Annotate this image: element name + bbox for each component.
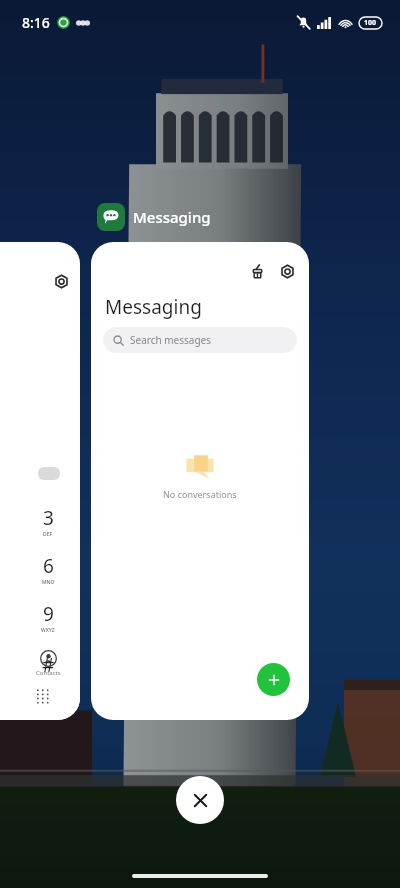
staticText: Contacts <box>36 669 61 677</box>
staticText: 6 <box>43 553 54 579</box>
staticText: DEF <box>43 531 53 538</box>
staticText: MNO <box>42 579 55 586</box>
staticText: 100 <box>364 18 377 28</box>
button[interactable]: Clean up <box>243 257 271 285</box>
staticText: 9 <box>43 601 54 627</box>
button[interactable]: Contacts <box>20 650 76 690</box>
staticText: No conversations <box>163 488 237 500</box>
button[interactable]: Messaging <box>97 202 211 232</box>
staticText: Messaging <box>105 294 202 320</box>
button[interactable]: Clean up <box>91 242 309 720</box>
button[interactable]: Settings <box>273 257 301 285</box>
staticText: # <box>42 652 55 678</box>
button[interactable]: Backspace <box>38 467 60 480</box>
button[interactable]: # <box>26 643 70 687</box>
staticText: WXYZ <box>41 627 55 634</box>
button[interactable]: New conversation <box>257 663 290 696</box>
staticText: 3 <box>43 505 54 531</box>
button[interactable]: Clear all <box>176 776 224 824</box>
button[interactable]: 6 <box>26 547 70 591</box>
staticText: 8:16 <box>22 13 50 32</box>
button[interactable]: 3 <box>26 499 70 543</box>
staticText: Messaging <box>133 207 211 227</box>
button[interactable]: Search messages <box>103 327 297 353</box>
staticText: Search messages <box>130 333 212 347</box>
button[interactable]: Settings <box>0 242 80 720</box>
button[interactable]: 9 <box>26 595 70 639</box>
button[interactable]: Settings <box>48 268 74 294</box>
